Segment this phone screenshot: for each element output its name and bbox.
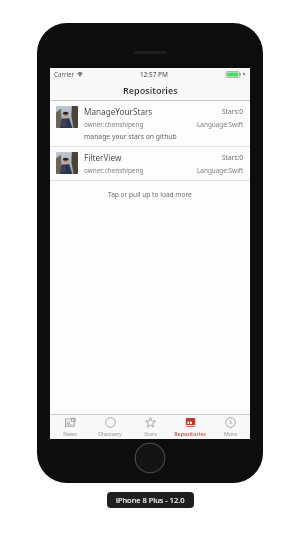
staticText: FilterView [84,152,122,163]
staticText: Discovery [98,430,122,437]
staticText: owner:chenshipeng [84,120,144,129]
staticText: Repositories [123,84,178,96]
button[interactable]: More [210,415,250,439]
staticText: News [63,430,77,437]
staticText: iPhone 8 Plus - 12.0 [116,495,185,505]
button[interactable]: ManageYourStars [50,101,250,147]
button[interactable]: Repositories [170,415,210,439]
staticText: Carrier [54,70,75,78]
staticText: 12:57 PM [140,70,168,79]
staticText: Tap or pull up to load more [108,190,192,199]
staticText: Stars [144,430,157,437]
staticText: ManageYourStars [84,106,153,117]
staticText: Language:Swift [197,120,244,129]
staticText: Stars:0 [222,107,244,116]
button[interactable]: Stars [130,415,170,439]
button[interactable]: FilterView [50,147,250,181]
staticText: Repositories [174,430,206,437]
staticText: Stars:0 [222,153,244,162]
staticText: manage your stars on github [84,132,177,141]
staticText: Language:Swift [197,166,244,175]
staticText: More [224,430,237,437]
staticText: owner:chenshipeng [84,166,144,175]
button[interactable]: Tap or pull up to load more [50,181,250,207]
button[interactable]: Discovery [90,415,130,439]
button[interactable]: News [50,415,90,439]
